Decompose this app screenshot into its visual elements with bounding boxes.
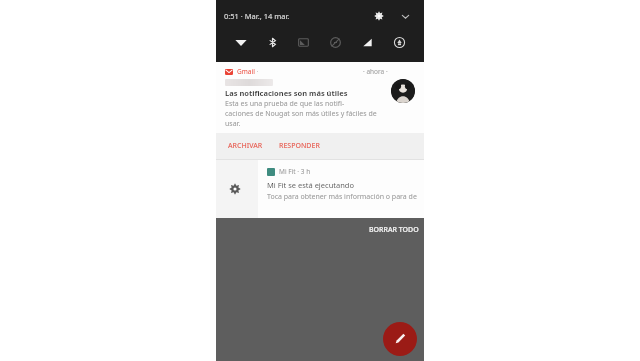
button[interactable]: Mobile data (357, 32, 377, 52)
staticText: 0:51 · Mar., 14 mar. (224, 11, 290, 21)
button[interactable]: ARCHIVAR (225, 138, 266, 154)
staticText: · ahora · (363, 67, 388, 76)
staticText: Mi Fit se está ejecutando (267, 180, 354, 190)
staticText: Mi Fit · 3 h (279, 167, 311, 176)
button[interactable]: Bluetooth (262, 32, 282, 52)
staticText: Las notificaciones son más útiles (225, 88, 348, 98)
button[interactable]: Battery saver (389, 32, 409, 52)
button[interactable]: Cast (293, 32, 313, 52)
button[interactable]: Mi Fit · 3 h (258, 160, 424, 218)
button[interactable]: Collapse (396, 7, 414, 25)
staticText: usar. (225, 119, 241, 129)
staticText: Toca para obtener más información o para… (267, 192, 417, 202)
button[interactable]: Gmail (216, 62, 424, 129)
button[interactable]: Wi-Fi (231, 32, 251, 52)
button[interactable]: RESPONDER (276, 138, 323, 154)
staticText: caciones de Nougat son más útiles y fáci… (225, 109, 377, 119)
staticText: RESPONDER (279, 141, 320, 151)
staticText: · (255, 67, 259, 76)
button[interactable]: Notification settings (222, 176, 248, 202)
button[interactable]: BORRAR TODO (364, 221, 424, 239)
button[interactable]: Do not disturb (325, 32, 345, 52)
button[interactable]: Compose (383, 322, 417, 356)
staticText: ARCHIVAR (228, 141, 263, 151)
staticText: BORRAR TODO (369, 225, 419, 235)
button[interactable]: Settings (370, 7, 388, 25)
staticText: Gmail (237, 67, 255, 76)
staticText: Esta es una prueba de que las notifi- (225, 99, 345, 109)
